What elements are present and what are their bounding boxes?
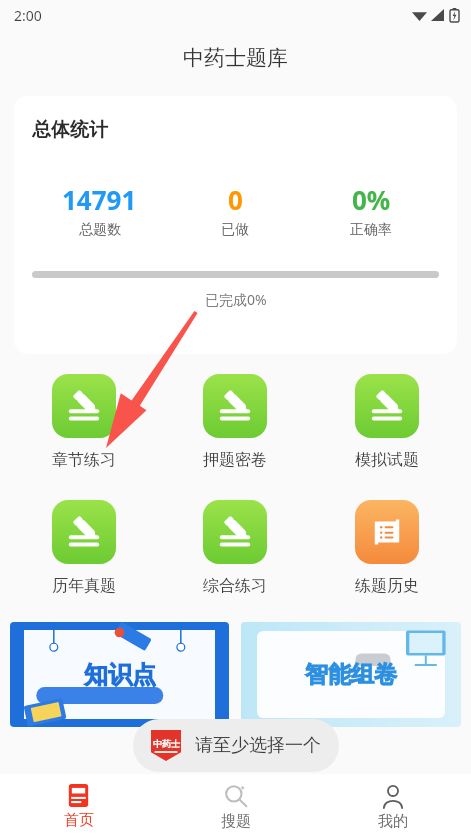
staticText: 请至少选择一个 [195, 734, 321, 757]
staticText: 总体统计 [32, 118, 108, 142]
staticText: 总题数 [79, 221, 121, 239]
button[interactable]: 首页 [0, 774, 157, 840]
button[interactable]: 押题密卷 [159, 370, 311, 474]
staticText: 我的 [378, 812, 408, 831]
button[interactable]: 模拟试题 [311, 370, 463, 474]
staticText: 章节练习 [52, 450, 116, 470]
button[interactable]: 章节练习 [8, 370, 159, 474]
staticText: 知识点 [84, 660, 156, 690]
staticText: 2:00 [14, 6, 42, 25]
staticText: 押题密卷 [203, 450, 267, 470]
button[interactable]: 综合练习 [159, 496, 311, 600]
button[interactable]: 搜题 [157, 774, 314, 840]
staticText: 已完成0% [205, 290, 267, 309]
staticText: 中药士 [153, 738, 180, 749]
staticText: 模拟试题 [355, 450, 419, 470]
button[interactable]: 历年真题 [8, 496, 159, 600]
button[interactable]: 智能组卷 [241, 622, 461, 727]
staticText: 首页 [64, 811, 94, 830]
button[interactable]: 我的 [314, 774, 471, 840]
button[interactable]: 总体统计 [14, 96, 457, 354]
staticText: 已做 [221, 221, 249, 239]
staticText: 练题历史 [355, 576, 419, 596]
staticText: 智能组卷 [305, 660, 397, 689]
staticText: 综合练习 [203, 576, 267, 596]
staticText: 0 [228, 182, 243, 217]
staticText: 14791 [62, 182, 137, 217]
staticText: 中药士题库 [183, 45, 288, 71]
staticText: 搜题 [221, 812, 251, 831]
button[interactable]: 知识点 [10, 622, 229, 727]
button[interactable]: 练题历史 [311, 496, 463, 600]
staticText: 正确率 [350, 221, 392, 239]
staticText: 历年真题 [52, 576, 116, 596]
staticText: 0% [352, 182, 391, 217]
